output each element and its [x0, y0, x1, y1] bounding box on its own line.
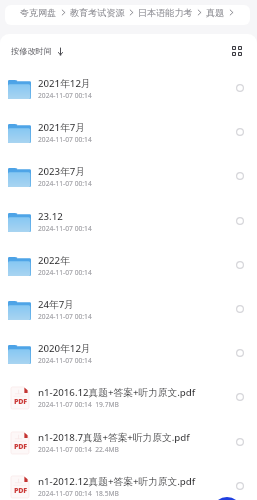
button[interactable]: Select item: [227, 208, 253, 234]
button[interactable]: 24年7月: [0, 287, 257, 331]
button[interactable]: Select item: [227, 296, 253, 322]
staticText: 夸克网盘: [20, 7, 57, 18]
staticText: 按修改时间: [11, 46, 52, 56]
button[interactable]: 2021年12月: [0, 66, 257, 110]
staticText: PDF: [14, 485, 27, 495]
staticText: 2024-11-07 00:14: [38, 312, 92, 321]
button[interactable]: Grid view: [227, 41, 247, 61]
staticText: 2021年7月: [38, 121, 86, 134]
staticText: 教育考试资源: [70, 7, 125, 18]
staticText: n1-2016.12真题+答案+听力原文.pdf: [38, 386, 196, 399]
staticText: 2024-11-07 00:14: [38, 224, 92, 233]
button[interactable]: Select item: [227, 163, 253, 189]
button[interactable]: Upload: [212, 497, 242, 500]
staticText: 2024-11-07 00:14: [38, 356, 92, 365]
staticText: PDF: [14, 441, 27, 451]
button[interactable]: 夸克网盘: [5, 5, 250, 25]
staticText: 2024-11-07 00:14 19.7MB: [38, 400, 119, 409]
staticText: 24年7月: [38, 298, 74, 311]
button[interactable]: 2023年7月: [0, 154, 257, 198]
staticText: 2022年: [38, 254, 70, 267]
staticText: 2024-11-07 00:14: [38, 179, 92, 188]
button[interactable]: Select item: [227, 75, 253, 101]
button[interactable]: Select item: [227, 384, 253, 410]
staticText: 2024-11-07 00:14: [38, 135, 92, 144]
button[interactable]: PDF: [0, 464, 257, 500]
button[interactable]: 2020年12月: [0, 331, 257, 375]
button[interactable]: 按修改时间: [6, 43, 68, 59]
staticText: 2024-11-07 00:14: [38, 268, 92, 277]
staticText: 2020年12月: [38, 342, 91, 355]
staticText: 2024-11-07 00:14 18.5MB: [38, 489, 119, 498]
staticText: PDF: [14, 396, 27, 406]
staticText: 2024-11-07 00:14: [38, 91, 92, 100]
button[interactable]: Select item: [227, 252, 253, 278]
button[interactable]: Select item: [227, 429, 253, 455]
button[interactable]: Select item: [227, 119, 253, 145]
staticText: n1-2018.7真题+答案+听力原文.pdf: [38, 431, 190, 444]
staticText: 日本语能力考: [138, 7, 193, 18]
button[interactable]: PDF: [0, 375, 257, 419]
staticText: n1-2012.12真题+答案+听力原文.pdf: [38, 475, 196, 488]
staticText: 2023年7月: [38, 165, 86, 178]
button[interactable]: Select item: [227, 340, 253, 366]
button[interactable]: 2021年7月: [0, 110, 257, 154]
button[interactable]: PDF: [0, 420, 257, 464]
button[interactable]: Select item: [227, 473, 253, 499]
staticText: 2024-11-07 00:14 22.4MB: [38, 445, 119, 454]
staticText: 真题: [206, 7, 225, 18]
button[interactable]: 23.12: [0, 199, 257, 243]
staticText: 23.12: [38, 210, 63, 223]
staticText: 2021年12月: [38, 77, 91, 90]
button[interactable]: 2022年: [0, 243, 257, 287]
